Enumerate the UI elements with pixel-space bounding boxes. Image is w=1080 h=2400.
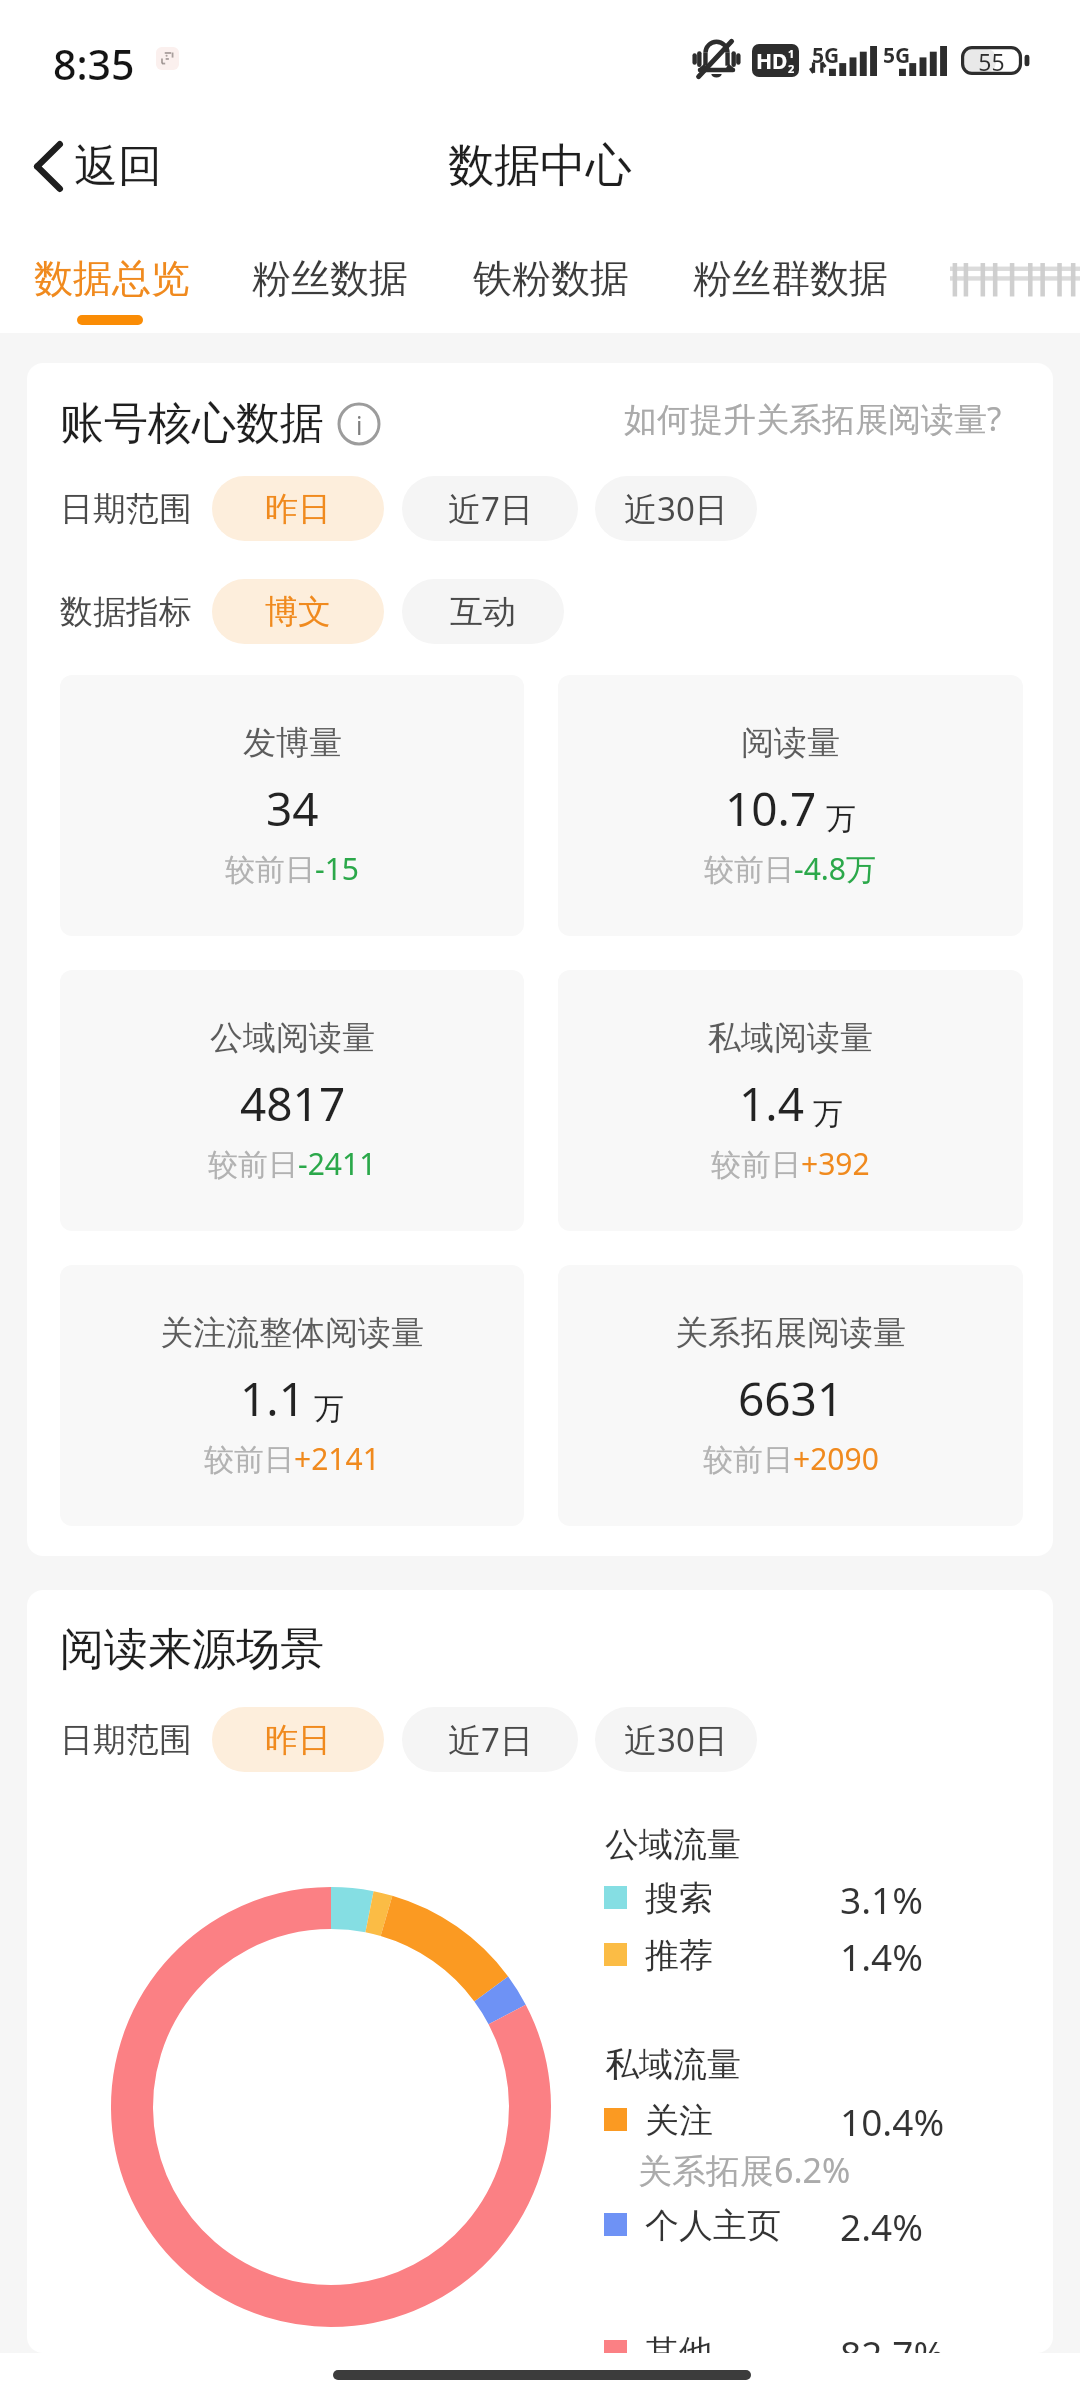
staticText: 2 — [788, 61, 795, 76]
staticText: 返回 — [74, 139, 162, 194]
staticText: 万 — [314, 1390, 344, 1428]
staticText: 1.4% — [840, 1931, 923, 1981]
staticText: 昨日 — [265, 1719, 331, 1761]
staticText: 较前日+392 — [711, 1143, 870, 1184]
staticText: 数据总览 — [34, 254, 190, 303]
staticText: 个人主页 — [645, 2204, 781, 2247]
staticText: 互动 — [450, 591, 516, 633]
button[interactable]: 其他 — [577, 2324, 953, 2353]
button[interactable]: 近30日 — [595, 1707, 757, 1772]
staticText: 较前日-15 — [225, 848, 359, 889]
staticText: 公域流量 — [605, 1823, 741, 1866]
button[interactable]: 数据总览 — [12, 240, 212, 317]
button[interactable]: 近30日 — [595, 476, 757, 541]
staticText: 推荐 — [645, 1934, 713, 1977]
button[interactable]: 博文 — [212, 579, 384, 644]
staticText: 关系拓展阅读量 — [675, 1312, 906, 1354]
button[interactable]: 返回 — [0, 116, 186, 216]
staticText: 较前日+2141 — [204, 1438, 380, 1479]
staticText: 万 — [813, 1095, 843, 1133]
staticText: 55 — [961, 46, 1022, 75]
staticText: 82.7% — [840, 2328, 945, 2353]
button[interactable]: 昨日 — [212, 476, 384, 541]
staticText: 近30日 — [624, 486, 728, 531]
staticText: 5G — [812, 41, 840, 70]
staticText: i — [356, 408, 363, 442]
staticText: 10.7 — [725, 777, 817, 840]
staticText: 发博量 — [243, 722, 342, 764]
staticText: 日期范围 — [60, 1719, 192, 1761]
staticText: 私域流量 — [605, 2043, 741, 2086]
staticText: 关系拓展6.2% — [638, 2147, 851, 2193]
button[interactable]: 互动 — [402, 579, 564, 644]
staticText: 私域阅读量 — [708, 1017, 873, 1059]
button[interactable]: 搜索 — [577, 1870, 953, 1927]
staticText: 近7日 — [448, 1717, 533, 1762]
staticText: 较前日-2411 — [208, 1143, 377, 1184]
button[interactable]: 粉丝群数据 — [671, 240, 910, 317]
staticText: 博文 — [265, 591, 331, 633]
staticText: 近30日 — [624, 1717, 728, 1762]
staticText: 数据中心 — [448, 137, 632, 195]
staticText: 5G — [883, 41, 911, 70]
staticText: 阅读来源场景 — [60, 1622, 324, 1677]
staticText: 粉丝群数据 — [693, 254, 888, 303]
staticText: 近7日 — [448, 486, 533, 531]
staticText: 6631 — [738, 1367, 844, 1430]
staticText: 1.1 — [240, 1367, 305, 1430]
button[interactable]: 近7日 — [402, 476, 578, 541]
button[interactable]: 推荐 — [577, 1927, 953, 1984]
staticText: 日期范围 — [60, 488, 192, 530]
staticText: 较前日-4.8万 — [704, 848, 877, 889]
staticText: HD — [756, 47, 788, 76]
staticText: 34 — [266, 777, 319, 840]
button[interactable]: 昨日 — [212, 1707, 384, 1772]
staticText: 粉丝数据 — [252, 254, 408, 303]
staticText: 1 — [788, 46, 795, 61]
button[interactable]: 如何提升关系拓展阅读量? — [624, 396, 1002, 441]
staticText: 较前日+2090 — [703, 1438, 879, 1479]
button[interactable]: 数据说明 — [337, 402, 381, 446]
staticText: 万 — [826, 800, 856, 838]
button[interactable]: 粉丝数据 — [230, 240, 430, 317]
button[interactable]: 关注 — [577, 2092, 953, 2149]
staticText: 10.4% — [840, 2096, 945, 2146]
staticText: 搜索 — [645, 1877, 713, 1920]
staticText: 昨日 — [265, 488, 331, 530]
staticText: 账号核心数据 — [60, 396, 324, 451]
staticText: 数据指标 — [60, 591, 192, 633]
button[interactable]: 铁粉数据 — [451, 240, 651, 317]
staticText: 4817 — [240, 1072, 346, 1135]
staticText: 1.4 — [739, 1072, 804, 1135]
staticText: 3.1% — [840, 1874, 923, 1924]
staticText: 公域阅读量 — [210, 1017, 375, 1059]
staticText: 铁粉数据 — [473, 254, 629, 303]
staticText: 2.4% — [840, 2201, 923, 2251]
staticText: 8:35 — [53, 36, 135, 92]
staticText: 关注 — [645, 2099, 713, 2142]
staticText: 关注流整体阅读量 — [160, 1312, 424, 1354]
staticText: 其他 — [645, 2331, 713, 2353]
button[interactable]: 近7日 — [402, 1707, 578, 1772]
staticText: 阅读量 — [741, 722, 840, 764]
button[interactable]: 个人主页 — [577, 2197, 953, 2254]
